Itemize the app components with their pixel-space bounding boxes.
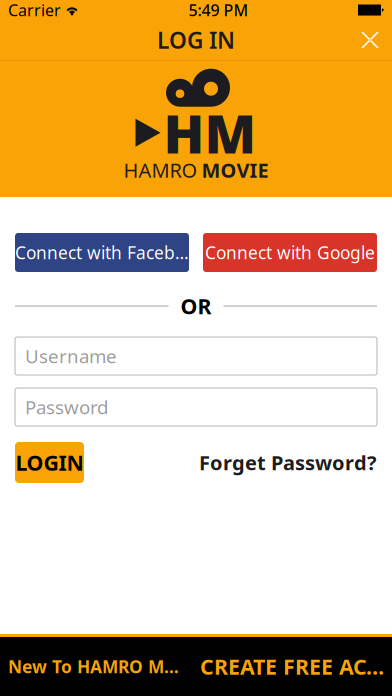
button[interactable]: LOGIN: [15, 442, 84, 483]
button[interactable]: Connect with Google: [203, 233, 377, 272]
staticText: OR: [180, 292, 211, 320]
staticText: HM: [163, 97, 256, 168]
button[interactable]: Forget Password?: [199, 449, 377, 476]
staticText: Connect with Facebook: [15, 241, 189, 264]
button[interactable]: Close: [348, 20, 392, 60]
button[interactable]: CREATE FREE ACCOUNT: [200, 652, 384, 681]
staticText: Forget Password?: [199, 449, 377, 476]
staticText: MOVIE: [201, 157, 268, 183]
staticText: LOGIN: [15, 448, 83, 477]
staticText: CREATE FREE ACCOUNT: [200, 652, 384, 681]
staticText: Password: [25, 395, 108, 419]
staticText: HAMRO: [123, 157, 197, 183]
staticText: 5:49 PM: [188, 0, 248, 21]
staticText: LOG IN: [157, 25, 235, 55]
staticText: Username: [25, 344, 117, 368]
button[interactable]: Connect with Facebook: [15, 233, 189, 272]
staticText: Carrier: [8, 0, 61, 21]
staticText: New To HAMRO MOVIE?: [8, 655, 192, 678]
staticText: Connect with Google: [205, 241, 375, 264]
